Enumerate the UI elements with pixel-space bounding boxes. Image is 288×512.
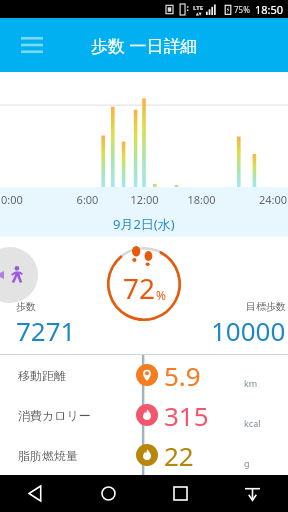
staticText: 0:00 bbox=[1, 192, 59, 207]
staticText: 22 bbox=[164, 438, 194, 473]
staticText: 18:50 bbox=[255, 2, 284, 17]
button[interactable]: Menu bbox=[12, 25, 52, 65]
staticText: 9月2日(水) bbox=[113, 215, 175, 233]
staticText: 75% bbox=[234, 4, 250, 15]
staticText: % bbox=[156, 287, 166, 303]
staticText: 目標歩数 bbox=[246, 300, 286, 313]
button[interactable]: 移動距離 bbox=[0, 355, 288, 395]
button[interactable]: Previous bbox=[0, 247, 38, 303]
staticText: km bbox=[244, 377, 258, 389]
staticText: 消費カロリー bbox=[18, 408, 91, 423]
staticText: 5.9 bbox=[164, 358, 201, 393]
staticText: ▲▼ bbox=[196, 12, 202, 16]
staticText: g bbox=[244, 457, 250, 469]
staticText: 歩数 bbox=[16, 300, 36, 313]
staticText: 72 bbox=[123, 269, 156, 307]
staticText: 10000 bbox=[211, 313, 286, 348]
button[interactable]: Home bbox=[72, 475, 144, 512]
staticText: 歩数 一日詳細 bbox=[91, 34, 198, 57]
staticText: 移動距離 bbox=[18, 368, 66, 383]
staticText: LTE bbox=[193, 4, 204, 12]
staticText: kcal bbox=[244, 417, 261, 429]
staticText: 24:00 bbox=[230, 192, 287, 207]
staticText: 7271 bbox=[16, 313, 76, 348]
button[interactable]: Back bbox=[0, 475, 72, 512]
button[interactable]: 消費カロリー bbox=[0, 395, 288, 435]
staticText: 18:00 bbox=[173, 192, 230, 207]
staticText: 脂肪燃焼量 bbox=[18, 448, 78, 463]
staticText: 6:00 bbox=[59, 192, 116, 207]
button[interactable]: 脂肪燃焼量 bbox=[0, 435, 288, 475]
button[interactable]: Recents bbox=[144, 475, 216, 512]
staticText: 315 bbox=[164, 398, 209, 433]
staticText: 12:00 bbox=[116, 192, 173, 207]
button[interactable]: Hide keyboard bbox=[216, 475, 288, 512]
